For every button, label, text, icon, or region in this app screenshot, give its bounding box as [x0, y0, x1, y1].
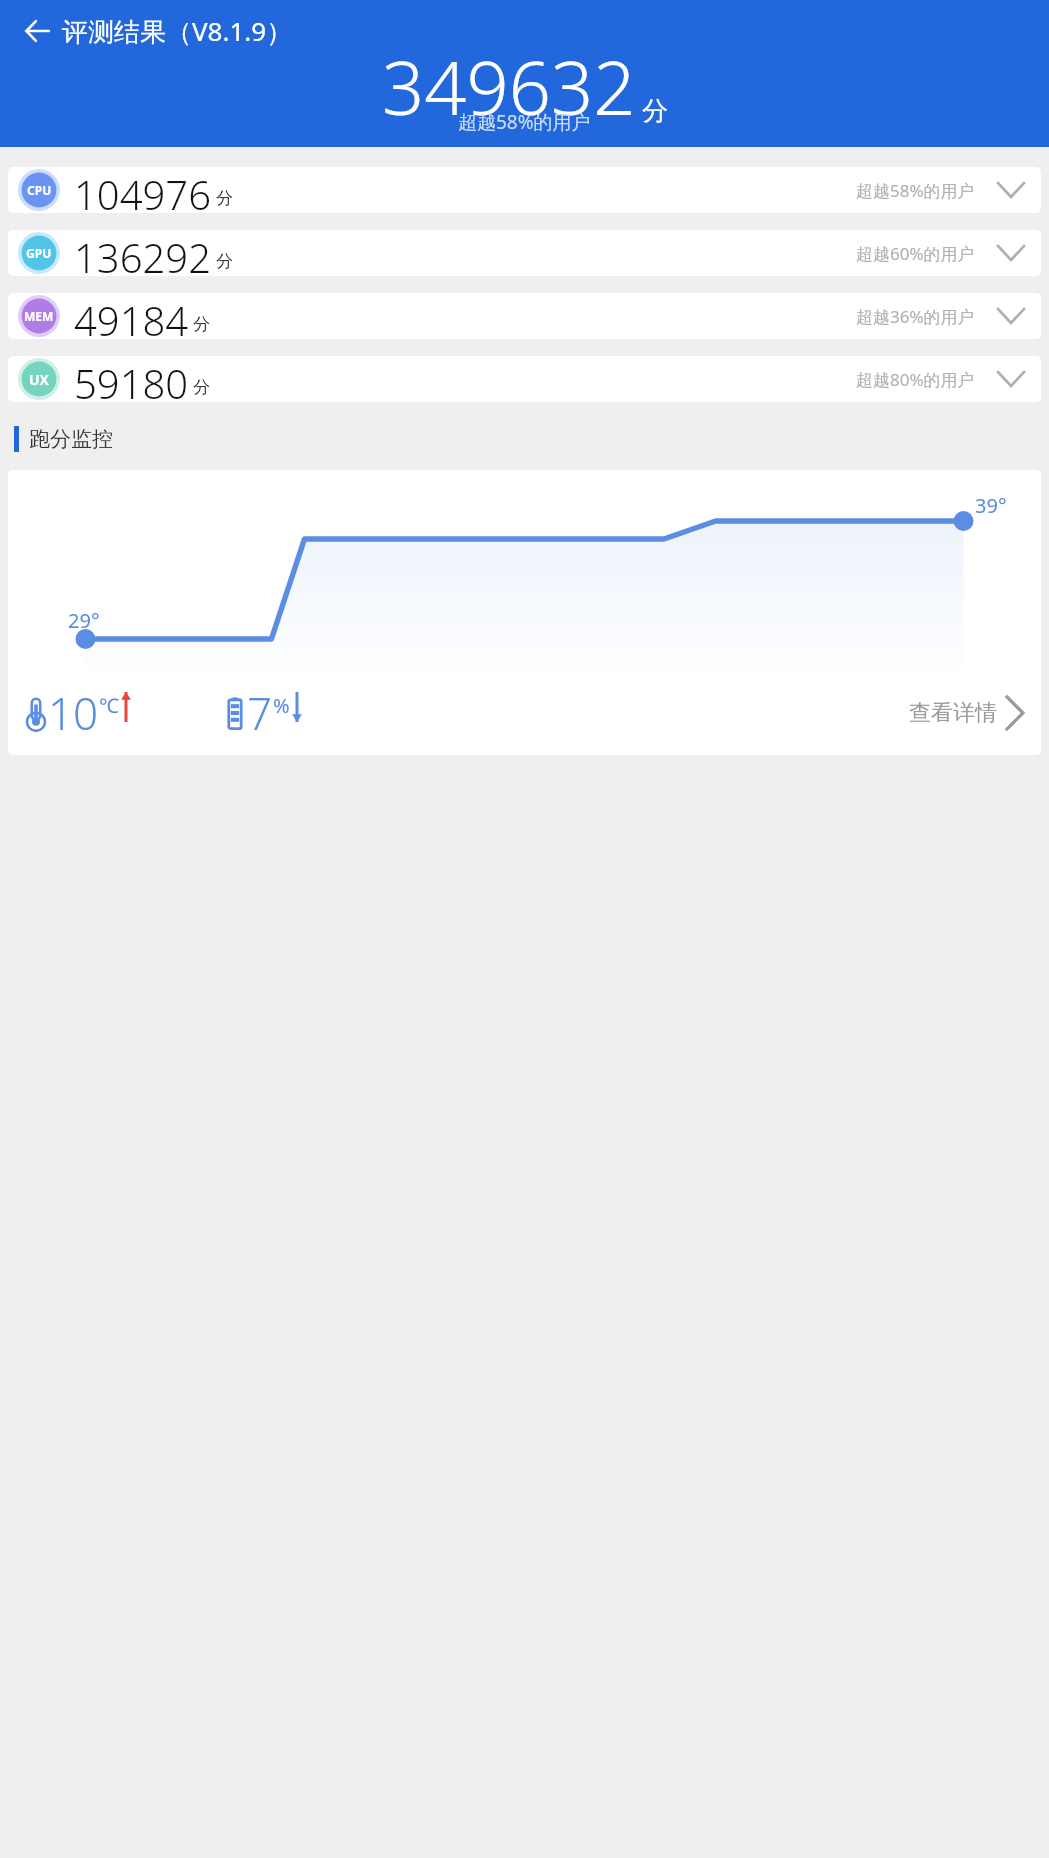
staticText: 超越58%的用户 — [458, 109, 591, 135]
staticText: 查看详情 — [909, 699, 997, 727]
staticText: 49184 — [74, 293, 189, 339]
staticText: 超越60%的用户 — [856, 242, 975, 265]
staticText: 分 — [193, 377, 210, 398]
button[interactable]: MEM — [8, 293, 1041, 339]
staticText: 104976 — [74, 167, 212, 213]
button[interactable]: GPU — [8, 230, 1041, 276]
staticText: 评测结果（V8.1.9） — [62, 13, 293, 49]
staticText: 7 — [247, 683, 273, 743]
staticText: 分 — [216, 188, 233, 209]
staticText: GPU — [26, 245, 52, 261]
staticText: 分 — [642, 95, 668, 128]
button[interactable]: CPU — [8, 167, 1041, 213]
staticText: 分 — [193, 314, 210, 335]
staticText: ℃ — [99, 692, 119, 719]
staticText: 39° — [975, 492, 1007, 519]
staticText: 10 — [48, 683, 99, 743]
staticText: CPU — [27, 182, 52, 198]
staticText: 超越36%的用户 — [856, 305, 975, 328]
staticText: % — [273, 692, 290, 719]
staticText: 跑分监控 — [29, 426, 113, 452]
button[interactable]: Back — [14, 7, 62, 55]
staticText: MEM — [24, 308, 54, 324]
staticText: 136292 — [74, 230, 212, 276]
staticText: 超越58%的用户 — [856, 179, 975, 202]
button[interactable]: UX — [8, 356, 1041, 402]
button[interactable]: 查看详情 — [909, 697, 1023, 729]
staticText: UX — [29, 370, 49, 389]
staticText: 349632 — [382, 36, 636, 137]
staticText: 分 — [216, 251, 233, 272]
staticText: 29° — [68, 607, 100, 634]
staticText: 59180 — [74, 356, 189, 402]
staticText: 超越80%的用户 — [856, 368, 975, 391]
